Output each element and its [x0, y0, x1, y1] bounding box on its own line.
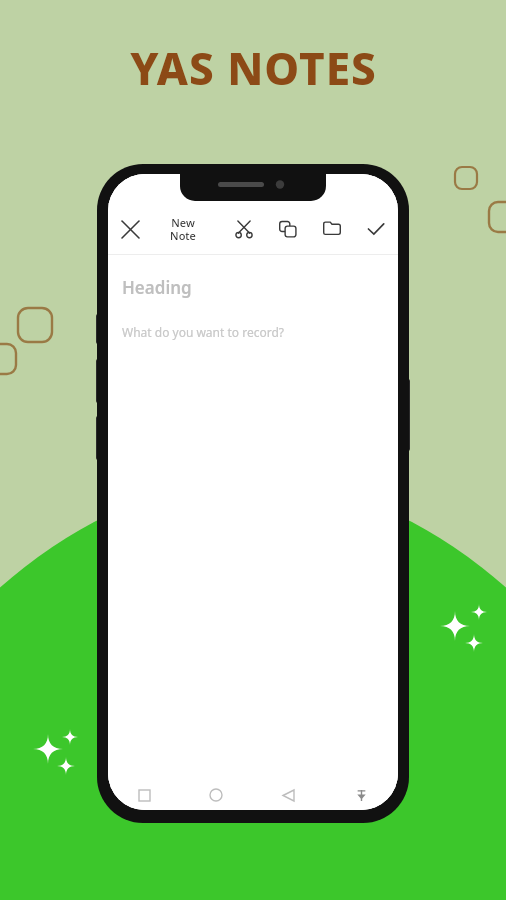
button[interactable]: Back	[252, 780, 325, 810]
staticText: New Note	[170, 215, 196, 243]
button[interactable]: Save	[354, 204, 398, 254]
staticText: What do you want to record?	[122, 324, 284, 340]
button[interactable]: Cut	[222, 204, 266, 254]
staticText: Heading	[122, 276, 192, 299]
button[interactable]: Keyboard	[325, 780, 398, 810]
button[interactable]: Home	[180, 780, 252, 810]
button[interactable]: New Note	[152, 204, 214, 254]
button[interactable]: Copy	[266, 204, 310, 254]
staticText: YAS NOTES	[130, 38, 377, 98]
button[interactable]: Folder	[310, 204, 354, 254]
button[interactable]: Recents	[108, 780, 180, 810]
button[interactable]: Close	[108, 204, 152, 254]
